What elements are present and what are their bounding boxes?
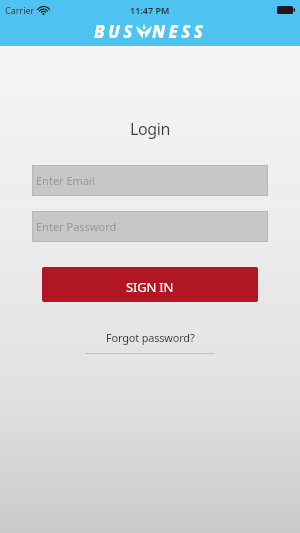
staticText: Enter Email xyxy=(36,173,95,188)
button[interactable]: Enter Password xyxy=(32,211,268,242)
button[interactable]: Enter Email xyxy=(32,165,268,196)
button[interactable]: SIGN IN xyxy=(42,267,258,302)
staticText: NESS xyxy=(152,20,207,43)
staticText: Forgot password? xyxy=(106,330,195,345)
staticText: BUS xyxy=(94,20,136,43)
staticText: 11:47 PM xyxy=(130,4,170,16)
staticText: SIGN IN xyxy=(126,278,174,296)
staticText: Enter Password xyxy=(36,219,117,234)
button[interactable]: Forgot password? xyxy=(106,330,195,345)
staticText: Login xyxy=(130,118,170,140)
staticText: Carrier xyxy=(5,4,35,16)
